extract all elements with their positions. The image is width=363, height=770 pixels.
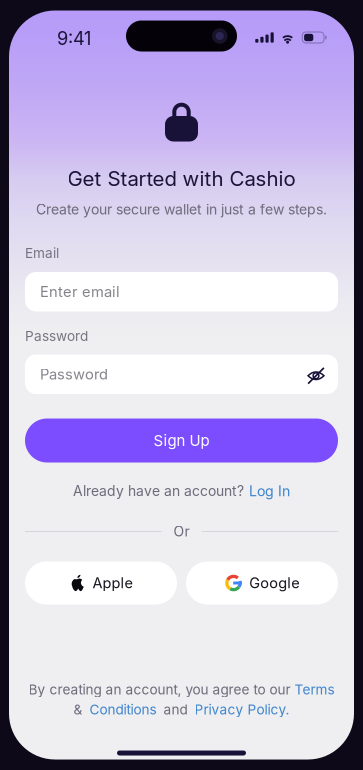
staticText: Conditions [89, 701, 156, 718]
staticText: Enter email [40, 283, 120, 301]
button[interactable]: Show password [303, 358, 329, 390]
button[interactable]: Conditions [89, 701, 156, 718]
button[interactable]: Terms [294, 681, 334, 698]
staticText: Get Started with Cashio [67, 166, 295, 191]
staticText: and [163, 701, 187, 718]
button[interactable]: Google [186, 561, 338, 604]
staticText: Google [249, 574, 299, 592]
staticText: Sign Up [153, 431, 209, 450]
button[interactable]: Apple [25, 561, 177, 604]
staticText: Apple [92, 574, 132, 592]
staticText: Password [25, 328, 88, 344]
staticText: Log In [249, 482, 290, 499]
staticText: Email [25, 245, 59, 261]
staticText: Create your secure wallet in just a few … [36, 201, 327, 218]
staticText: & [73, 701, 82, 718]
staticText: Or [173, 523, 189, 540]
button[interactable]: Log In [249, 482, 290, 499]
staticText: 9:41 [57, 27, 91, 49]
staticText: By creating an account, you agree to our [28, 681, 294, 698]
staticText: Password [40, 365, 108, 383]
staticText: Already have an account? [73, 483, 244, 499]
staticText: Privacy Policy. [194, 701, 289, 718]
button[interactable]: Sign Up [25, 418, 338, 462]
button[interactable]: Privacy Policy. [194, 701, 289, 718]
staticText: Terms [294, 681, 334, 698]
